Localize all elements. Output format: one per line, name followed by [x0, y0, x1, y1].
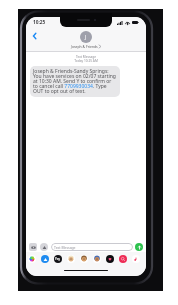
staticText: 10:25	[33, 19, 46, 26]
button[interactable]	[132, 255, 140, 263]
button[interactable]: Text Message	[51, 243, 133, 251]
button[interactable]	[80, 255, 88, 263]
button[interactable]	[41, 255, 49, 263]
button[interactable]: App Store	[40, 243, 48, 251]
staticText: Text Message	[26, 55, 146, 59]
staticText: Text Message	[54, 245, 76, 250]
button[interactable]	[106, 255, 114, 263]
button[interactable]: Send	[135, 243, 143, 251]
button[interactable]: Camera	[29, 243, 37, 251]
button[interactable]	[93, 255, 101, 263]
staticText: Pay	[55, 257, 61, 261]
button[interactable]: Pay	[54, 255, 62, 263]
staticText: J	[85, 34, 87, 41]
button[interactable]: Back	[28, 30, 40, 42]
staticText: Today 10:25 AM	[26, 59, 146, 63]
button[interactable]	[67, 255, 75, 263]
staticText: Joseph & Friends	[71, 44, 98, 49]
button[interactable]	[28, 255, 36, 263]
staticText: Joseph & Friends-Sandy Springs: You have…	[33, 68, 117, 95]
button[interactable]	[119, 255, 127, 263]
